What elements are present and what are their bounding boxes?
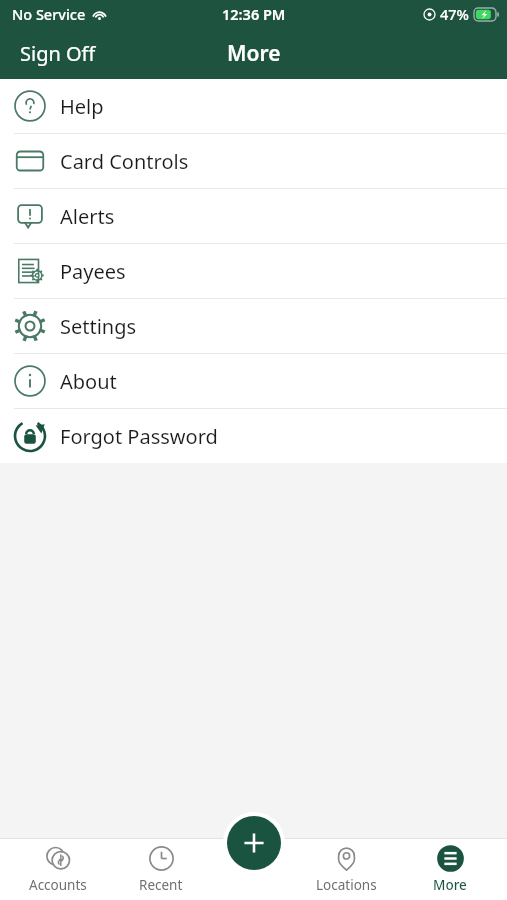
button[interactable]: Settings bbox=[0, 299, 507, 353]
button[interactable]: Sign Off bbox=[0, 32, 116, 75]
button[interactable]: Forgot Password bbox=[0, 409, 507, 463]
staticText: Card Controls bbox=[60, 148, 189, 175]
staticText: More bbox=[433, 876, 467, 894]
staticText: No Service bbox=[12, 4, 86, 24]
staticText: Accounts bbox=[29, 876, 87, 894]
button[interactable]: Alerts bbox=[0, 189, 507, 243]
staticText: Settings bbox=[60, 313, 137, 340]
staticText: 47% bbox=[440, 4, 469, 24]
button[interactable]: Add bbox=[227, 816, 281, 870]
staticText: About bbox=[60, 368, 117, 395]
staticText: Locations bbox=[316, 876, 377, 894]
staticText: Sign Off bbox=[20, 40, 96, 67]
button[interactable]: About bbox=[0, 354, 507, 408]
staticText: More bbox=[227, 39, 281, 68]
button[interactable]: Card Controls bbox=[0, 134, 507, 188]
button[interactable]: More bbox=[404, 838, 496, 900]
button[interactable]: Help bbox=[0, 79, 507, 133]
staticText: Recent bbox=[139, 876, 183, 894]
button[interactable]: Accounts bbox=[12, 838, 104, 900]
staticText: Help bbox=[60, 93, 104, 120]
button[interactable]: Payees bbox=[0, 244, 507, 298]
staticText: Forgot Password bbox=[60, 423, 218, 450]
staticText: Alerts bbox=[60, 203, 115, 230]
button[interactable]: Locations bbox=[300, 838, 392, 900]
staticText: 12:36 PM bbox=[222, 4, 286, 24]
button[interactable]: Recent bbox=[115, 838, 207, 900]
staticText: Payees bbox=[60, 258, 126, 285]
